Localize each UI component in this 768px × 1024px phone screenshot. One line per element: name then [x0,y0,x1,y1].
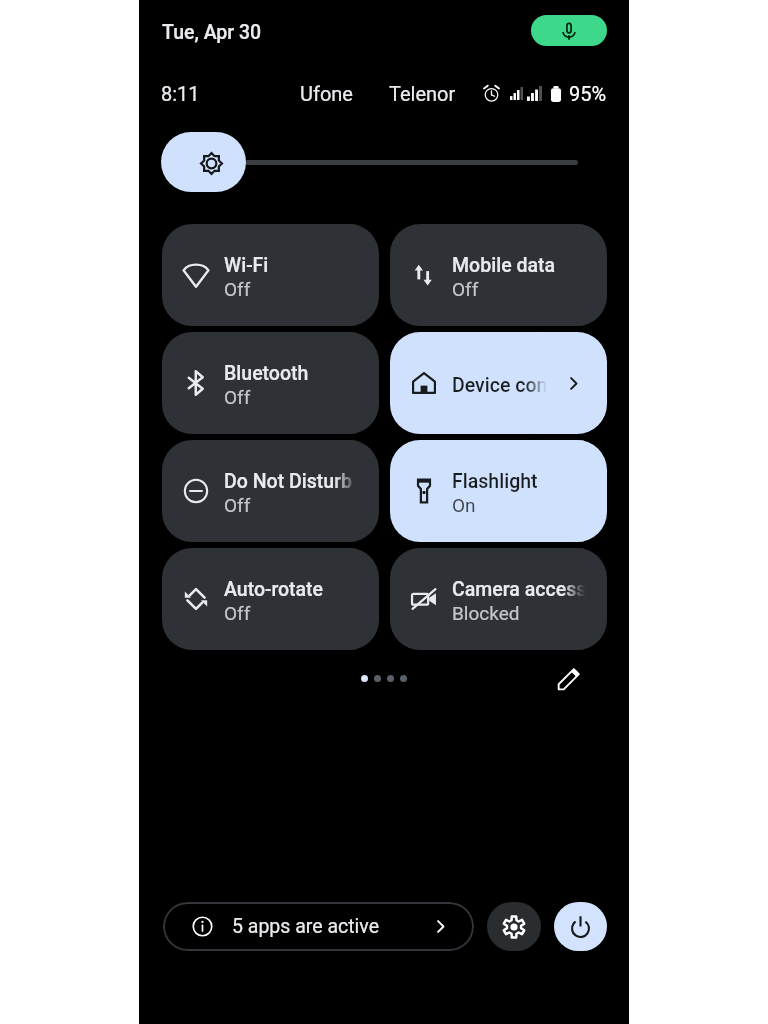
staticText: Bluetooth [224,362,309,385]
staticText: On [452,494,476,516]
staticText: 8:11 [161,82,200,105]
staticText: Off [452,278,479,300]
staticText: 5 apps are active [232,915,380,938]
staticText: Flashlight [452,470,538,493]
staticText: Mobile data [452,254,556,277]
staticText: Off [224,386,251,408]
staticText: Camera access [452,578,585,601]
staticText: Blocked [452,602,520,624]
button[interactable]: Mobile data [390,224,607,326]
button[interactable]: Wi-Fi [162,224,379,326]
button[interactable]: Camera access [390,548,607,650]
button[interactable]: 5 apps are active [163,902,474,951]
button[interactable]: Do Not Disturb [162,440,379,542]
button[interactable]: Brightness [161,132,246,192]
button[interactable]: Auto-rotate [162,548,379,650]
staticText: Wi-Fi [224,254,269,277]
staticText: Do Not Disturb [224,470,352,493]
staticText: Ufone [300,82,353,105]
staticText: Device controls [452,374,547,397]
staticText: Off [224,278,251,300]
staticText: Off [224,494,251,516]
button[interactable]: Settings [487,902,541,951]
button[interactable]: Device controls [390,332,607,434]
button[interactable]: Edit tiles [551,661,586,696]
staticText: Auto-rotate [224,578,324,601]
button[interactable]: Flashlight [390,440,607,542]
staticText: Tue, Apr 30 [162,21,262,44]
staticText: Telenor [389,82,456,105]
button[interactable]: Voice assistant [531,15,607,46]
staticText: Off [224,602,251,624]
staticText: 95% [569,82,607,105]
button[interactable]: Bluetooth [162,332,379,434]
button[interactable]: Power [554,902,607,951]
